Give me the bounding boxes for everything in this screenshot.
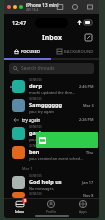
staticText: you: created an event scheduled for M…: [29, 156, 84, 161]
staticText: BACKGROUND: [64, 49, 94, 55]
staticText: Inbox: [42, 33, 62, 43]
staticText: FOCUSED: [21, 49, 41, 55]
staticText: 12:47: [12, 19, 27, 26]
staticText: try again: [22, 117, 79, 123]
staticText: derp: [29, 82, 42, 90]
button[interactable]: More: [86, 3, 94, 11]
button[interactable]: BACKGROUND: [51, 45, 99, 58]
staticText: you: soon: [29, 137, 47, 142]
button[interactable]: GENESIS: [4, 143, 99, 162]
staticText: Nov 8: [83, 193, 94, 198]
staticText: Mar 1: [22, 166, 33, 171]
staticText: 2:23 PM: [79, 131, 94, 136]
staticText: Profile: [46, 209, 57, 213]
staticText: GENESIS: [29, 78, 42, 82]
staticText: GENESIS: [29, 125, 42, 129]
button[interactable]: GENESIS: [4, 77, 99, 96]
button[interactable]: Apps: [67, 199, 99, 213]
staticText: 2:46 PM: [79, 84, 94, 89]
staticText: No messages: [29, 186, 54, 191]
staticText: mochi updated the thread's nam…: [29, 90, 77, 95]
staticText: Mar 3: [83, 103, 94, 108]
button[interactable]: Search threads: [9, 63, 94, 74]
button[interactable]: Profile: [35, 199, 67, 213]
button[interactable]: GENESIS: [4, 192, 99, 198]
button[interactable]: Compose: [84, 33, 93, 42]
staticText: gaylee: [29, 129, 48, 137]
staticText: 2:26 PM: [79, 117, 94, 122]
staticText: Thu: [86, 150, 94, 155]
button[interactable]: try again: [4, 115, 99, 124]
staticText: 3: [24, 199, 26, 203]
staticText: Search threads: [21, 65, 55, 72]
staticText: GENESIS: [29, 97, 42, 101]
staticText: Samgggggg: [29, 101, 63, 109]
staticText: Apps: [79, 209, 87, 213]
staticText: iOS 16.4: [26, 8, 39, 12]
button[interactable]: 3: [4, 199, 35, 213]
staticText: GENESIS: [29, 174, 42, 178]
button[interactable]: GENESIS: [4, 173, 99, 192]
button[interactable]: FOCUSED: [4, 45, 51, 58]
staticText: ben: [29, 148, 40, 156]
staticText: Jan 17: [82, 180, 94, 185]
staticText: Inbox: [15, 209, 25, 213]
staticText: you: try again: [29, 109, 54, 114]
staticText: GENESIS: [29, 192, 42, 196]
button[interactable]: Screenshot: [56, 3, 64, 11]
button[interactable]: GENESIS: [4, 96, 99, 115]
staticText: GENESIS: [29, 144, 42, 148]
button[interactable]: GENESIS: [4, 124, 99, 143]
button[interactable]: Record: [71, 3, 79, 11]
staticText: iPhone 13 mini: [26, 2, 59, 8]
staticText: God help us: [29, 178, 62, 186]
